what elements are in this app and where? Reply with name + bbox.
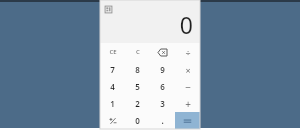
staticText: . — [161, 115, 164, 126]
staticText: CE — [109, 48, 117, 56]
button[interactable]: 0 — [125, 112, 150, 129]
staticText: 1 — [110, 98, 115, 109]
staticText: 4 — [110, 81, 115, 92]
staticText: 0 — [135, 115, 140, 126]
button[interactable]: Menu — [104, 5, 113, 14]
button[interactable]: 1 — [100, 95, 125, 112]
button[interactable]: Subtract — [175, 78, 200, 95]
staticText: 6 — [160, 81, 165, 92]
staticText: 2 — [135, 98, 140, 109]
staticText: ÷ — [185, 46, 191, 58]
button[interactable]: Positive negative — [100, 112, 125, 129]
button[interactable]: Clear — [125, 43, 150, 61]
staticText: 3 — [160, 98, 165, 109]
button[interactable]: Decimal point — [150, 112, 175, 129]
button[interactable]: 4 — [100, 78, 125, 95]
staticText: 7 — [110, 64, 115, 75]
button[interactable]: 2 — [125, 95, 150, 112]
button[interactable]: Add — [175, 95, 200, 112]
button[interactable]: 9 — [150, 61, 175, 78]
button[interactable]: 8 — [125, 61, 150, 78]
button[interactable]: Divide — [175, 43, 200, 61]
staticText: × — [185, 64, 191, 76]
staticText: 9 — [160, 64, 165, 75]
staticText: C — [136, 48, 140, 56]
button[interactable]: 3 — [150, 95, 175, 112]
button[interactable]: Equals — [175, 112, 200, 129]
staticText: 5 — [135, 81, 140, 92]
button[interactable]: Clear entry — [100, 43, 125, 61]
button[interactable]: 5 — [125, 78, 150, 95]
staticText: + — [185, 97, 191, 111]
button[interactable]: 7 — [100, 61, 125, 78]
button[interactable]: 6 — [150, 78, 175, 95]
button[interactable]: Multiply — [175, 61, 200, 78]
staticText: 0 — [179, 9, 193, 40]
staticText: − — [185, 80, 191, 94]
staticText: 8 — [135, 64, 140, 75]
button[interactable]: Backspace — [150, 43, 175, 61]
